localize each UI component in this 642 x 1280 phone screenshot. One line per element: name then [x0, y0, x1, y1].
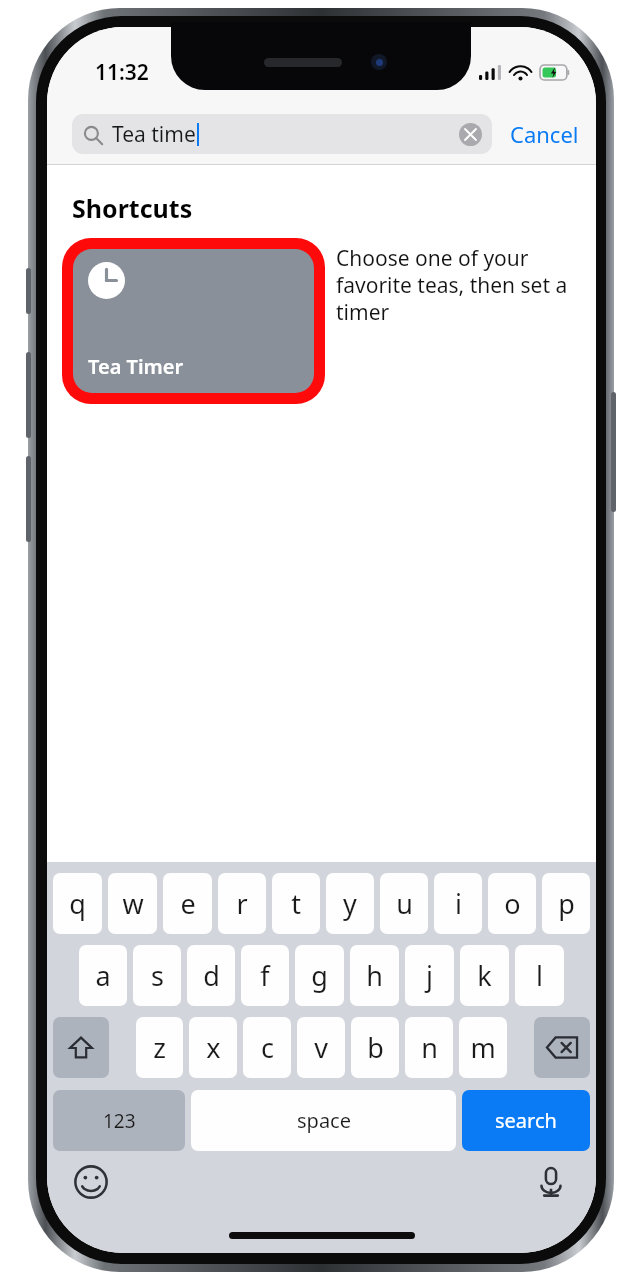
- staticText: Tea Timer: [88, 353, 184, 380]
- staticText: m: [470, 1029, 496, 1066]
- button[interactable]: d: [187, 945, 235, 1006]
- staticText: s: [151, 957, 164, 994]
- button[interactable]: f: [241, 945, 289, 1006]
- staticText: p: [558, 885, 575, 922]
- button[interactable]: b: [351, 1017, 399, 1078]
- staticText: v: [314, 1029, 328, 1066]
- staticText: e: [180, 885, 196, 922]
- staticText: 11:32: [95, 58, 149, 87]
- button[interactable]: o: [488, 873, 536, 934]
- staticText: Choose one of your favorite teas, then s…: [336, 244, 576, 326]
- button[interactable]: k: [460, 945, 509, 1006]
- button[interactable]: w: [108, 873, 157, 934]
- staticText: f: [260, 957, 270, 994]
- button[interactable]: a: [79, 945, 127, 1006]
- button[interactable]: v: [297, 1017, 345, 1078]
- button[interactable]: j: [405, 945, 454, 1006]
- staticText: y: [343, 885, 357, 922]
- staticText: j: [426, 957, 433, 994]
- button[interactable]: search: [462, 1090, 590, 1151]
- staticText: u: [396, 885, 413, 922]
- staticText: i: [455, 885, 462, 922]
- staticText: z: [153, 1029, 166, 1066]
- button[interactable]: z: [136, 1017, 183, 1078]
- button[interactable]: q: [53, 873, 102, 934]
- staticText: r: [236, 885, 248, 922]
- button[interactable]: u: [380, 873, 428, 934]
- staticText: n: [421, 1029, 438, 1066]
- button[interactable]: t: [272, 873, 320, 934]
- button[interactable]: space: [191, 1090, 456, 1151]
- button[interactable]: Cancel: [506, 113, 583, 155]
- staticText: 123: [103, 1108, 136, 1134]
- button[interactable]: Tea time: [72, 114, 492, 154]
- button[interactable]: Clear text: [459, 123, 482, 146]
- staticText: c: [261, 1029, 274, 1066]
- button[interactable]: n: [405, 1017, 453, 1078]
- staticText: space: [297, 1107, 351, 1134]
- staticText: o: [504, 885, 521, 922]
- button[interactable]: x: [189, 1017, 237, 1078]
- staticText: Cancel: [510, 119, 579, 149]
- button[interactable]: p: [542, 873, 590, 934]
- staticText: g: [311, 957, 328, 994]
- staticText: b: [367, 1029, 384, 1066]
- staticText: l: [536, 957, 543, 994]
- button[interactable]: 123: [53, 1090, 185, 1151]
- staticText: d: [203, 957, 220, 994]
- staticText: q: [69, 885, 86, 922]
- button[interactable]: e: [163, 873, 212, 934]
- staticText: x: [206, 1029, 221, 1066]
- button[interactable]: y: [326, 873, 374, 934]
- button[interactable]: Backspace: [534, 1017, 590, 1078]
- staticText: w: [122, 885, 144, 922]
- button[interactable]: g: [295, 945, 344, 1006]
- staticText: t: [291, 885, 301, 922]
- staticText: k: [477, 957, 492, 994]
- button[interactable]: s: [133, 945, 181, 1006]
- button[interactable]: c: [243, 1017, 291, 1078]
- staticText: search: [495, 1107, 557, 1134]
- button[interactable]: l: [515, 945, 564, 1006]
- staticText: a: [95, 957, 111, 994]
- button[interactable]: Tea Timer: [73, 249, 314, 393]
- staticText: h: [366, 957, 383, 994]
- button[interactable]: i: [434, 873, 482, 934]
- button[interactable]: Shift: [53, 1017, 109, 1078]
- button[interactable]: Dictation: [534, 1165, 568, 1199]
- button[interactable]: h: [350, 945, 399, 1006]
- staticText: Shortcuts: [72, 191, 193, 225]
- button[interactable]: Emoji keyboard: [74, 1165, 108, 1199]
- button[interactable]: m: [459, 1017, 507, 1078]
- staticText: Tea time: [112, 120, 196, 149]
- button[interactable]: r: [218, 873, 266, 934]
